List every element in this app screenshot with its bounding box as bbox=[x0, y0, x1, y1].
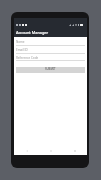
button[interactable]: Back bbox=[14, 149, 39, 152]
button[interactable]: Home bbox=[39, 149, 63, 152]
button[interactable]: Email ID bbox=[14, 46, 87, 54]
button[interactable]: Name bbox=[14, 37, 87, 46]
staticText: Name bbox=[16, 40, 25, 44]
button[interactable]: Reference Code bbox=[14, 54, 87, 61]
button[interactable]: SUBMIT bbox=[16, 67, 85, 73]
button[interactable]: Account Manager bbox=[14, 28, 87, 37]
staticText: Account Manager bbox=[16, 30, 49, 35]
staticText: SUBMIT bbox=[45, 67, 56, 71]
staticText: Email ID bbox=[16, 48, 28, 52]
staticText: Reference Code bbox=[16, 56, 39, 60]
button[interactable]: Recents bbox=[63, 149, 87, 152]
